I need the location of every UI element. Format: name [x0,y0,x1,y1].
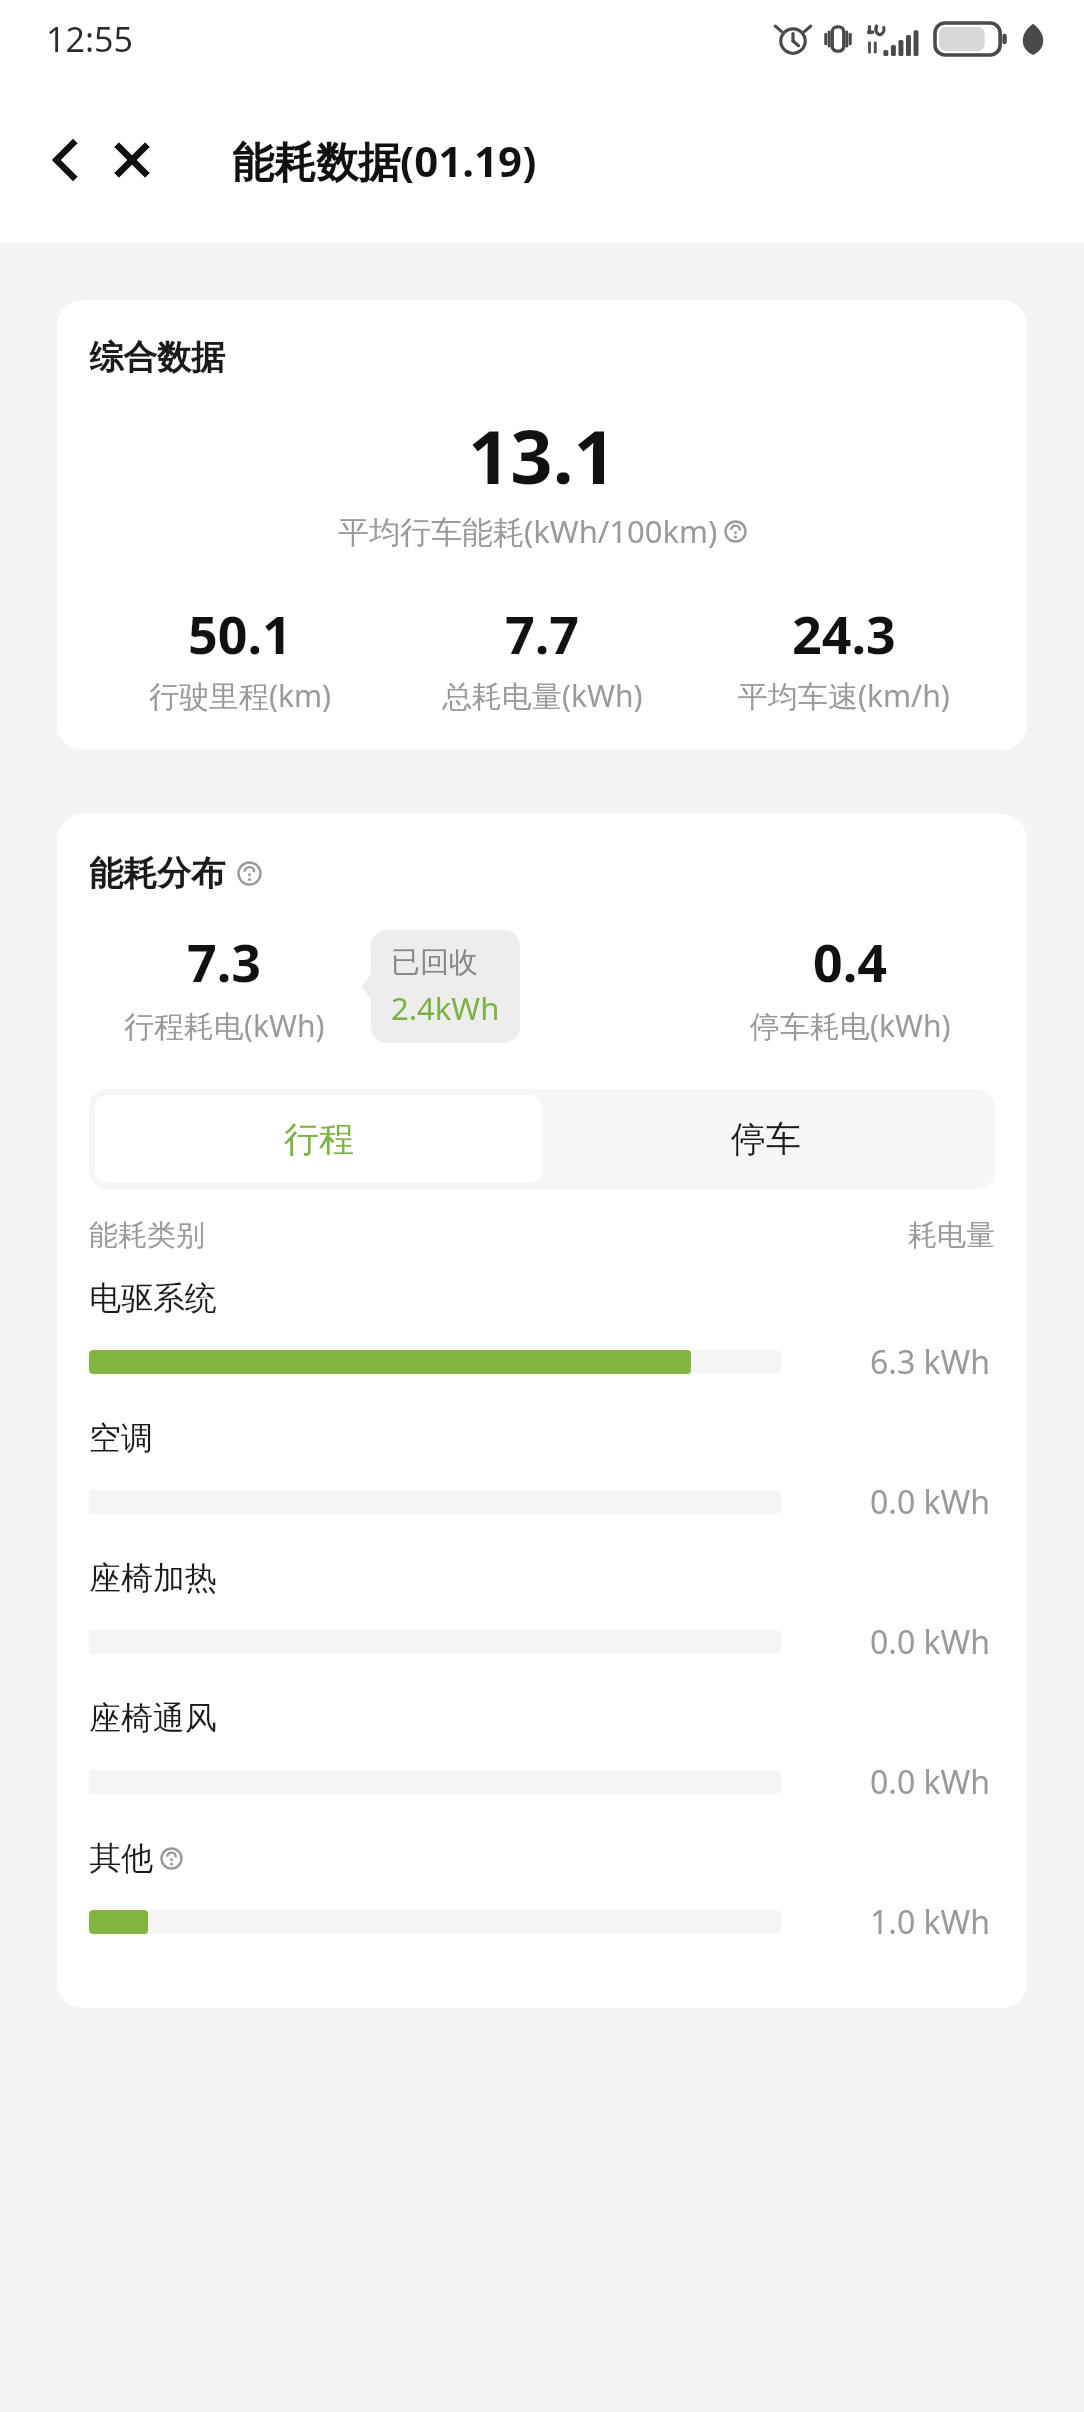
staticText: 空调 [89,1418,153,1458]
staticText: 12:55 [46,16,133,62]
staticText: 7.7 [505,598,580,669]
staticText: 停车 [731,1117,801,1161]
staticText: 50.1 [188,598,292,669]
staticText: 6.3 kWh [870,1340,991,1384]
button[interactable]: Close [92,120,172,200]
staticText: 0.0 kWh [870,1620,991,1664]
staticText: 7.3 [187,926,262,997]
staticText: 平均车速(km/h) [738,675,950,716]
staticText: 能耗类别 [89,1217,205,1254]
staticText: 电驱系统 [89,1278,217,1318]
staticText: 0.0 kWh [870,1760,991,1804]
staticText: 13.1 [468,405,616,506]
staticText: 1.0 kWh [870,1900,991,1944]
staticText: 24.3 [792,598,896,669]
staticText: 2.4kWh [391,987,500,1029]
staticText: 总耗电量(kWh) [442,675,643,716]
staticText: 座椅通风 [89,1698,217,1738]
staticText: 行程耗电(kWh) [124,1005,325,1046]
staticText: 行程 [284,1117,354,1161]
staticText: 座椅加热 [89,1558,217,1598]
button[interactable]: Back [30,124,102,196]
staticText: 平均行车能耗(kWh/100km) [338,510,718,552]
staticText: 0.4 [813,926,888,997]
staticText: 其他 [89,1838,153,1878]
staticText: 综合数据 [89,336,225,379]
button[interactable]: 行程 [95,1095,542,1183]
staticText: 能耗数据(01.19) [232,132,537,189]
staticText: 停车耗电(kWh) [750,1005,951,1046]
staticText: 0.0 kWh [870,1480,991,1524]
staticText: 行驶里程(km) [149,675,332,716]
button[interactable]: 停车 [542,1095,989,1183]
staticText: 已回收 [391,944,478,981]
staticText: 能耗分布 [89,852,225,895]
staticText: 耗电量 [908,1217,995,1254]
